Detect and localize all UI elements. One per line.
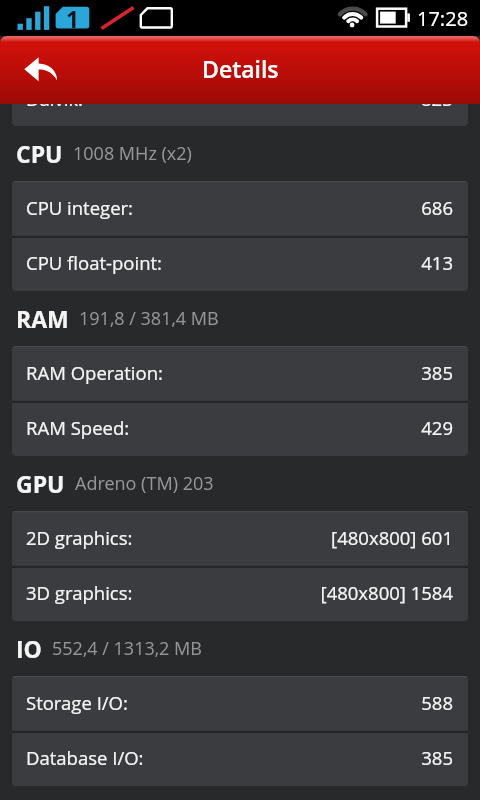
staticText: RAM Speed: [26,415,130,440]
button[interactable]: Back [6,45,76,95]
staticText: 1008 MHz (x2) [73,141,192,166]
staticText: Details [202,53,279,84]
staticText: 191,8 / 381,4 MB [79,306,219,331]
staticText: 385 [421,745,453,770]
staticText: 2D graphics: [26,525,133,550]
staticText: 17:28 [417,5,469,32]
staticText: 1 [66,3,80,34]
staticText: CPU integer: [26,195,134,220]
staticText: 385 [421,360,453,385]
staticText: 686 [421,195,453,220]
button[interactable]: 3D graphics: [12,566,468,621]
staticText: RAM Operation: [26,360,163,385]
staticText: [480x800] 601 [331,525,453,550]
staticText: 552,4 / 1313,2 MB [52,636,203,661]
staticText: IO [16,633,42,664]
staticText: Adreno (TM) 203 [75,471,214,496]
staticText: CPU [16,138,63,169]
staticText: [480x800] 1584 [320,580,453,605]
staticText: RAM [16,303,69,334]
staticText: 823 [421,104,453,108]
staticText: GPU [16,468,65,499]
staticText: CPU float-point: [26,250,162,275]
button[interactable]: Database I/O: [12,731,468,786]
button[interactable]: CPU integer: [12,181,468,236]
staticText: 413 [421,250,453,275]
button[interactable]: RAM Speed: [12,401,468,456]
staticText: Database I/O: [26,745,144,770]
button[interactable]: CPU float-point: [12,236,468,291]
button[interactable]: Storage I/O: [12,676,468,731]
staticText: 3D graphics: [26,580,133,605]
staticText: Dalvik: [26,104,84,108]
staticText: Storage I/O: [26,690,128,715]
staticText: 429 [421,415,453,440]
button[interactable]: RAM Operation: [12,346,468,401]
button[interactable]: 2D graphics: [12,511,468,566]
staticText: 588 [421,690,453,715]
